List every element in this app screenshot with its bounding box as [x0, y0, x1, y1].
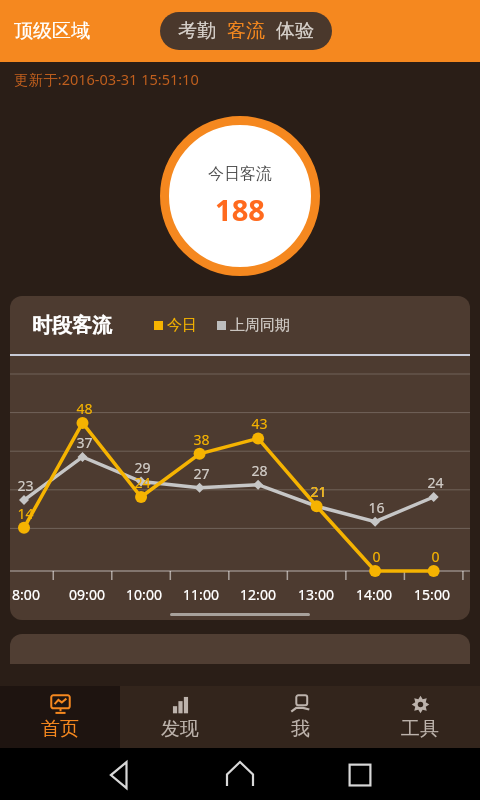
staticText: 考勤: [178, 19, 216, 43]
staticText: 时段客流: [32, 313, 112, 338]
button[interactable]: 考勤: [178, 19, 216, 43]
staticText: 13:00: [298, 585, 334, 604]
staticText: 上周同期: [230, 316, 290, 335]
staticText: 顶级区域: [14, 19, 90, 43]
staticText: 体验: [276, 19, 314, 43]
staticText: 客流: [227, 19, 265, 43]
staticText: 21: [310, 482, 327, 501]
button[interactable]: 发现: [120, 686, 240, 748]
staticText: 14:00: [356, 585, 392, 604]
staticText: 29: [134, 458, 151, 477]
button[interactable]: 客流: [227, 19, 265, 43]
staticText: 0: [431, 547, 440, 566]
staticText: 48: [76, 399, 93, 418]
staticText: 21: [310, 482, 327, 501]
button[interactable]: 上周同期: [217, 316, 290, 335]
staticText: 10:00: [126, 585, 162, 604]
staticText: 8:00: [12, 585, 40, 604]
staticText: 24: [427, 473, 444, 492]
staticText: 16: [368, 498, 385, 517]
staticText: 24: [134, 473, 151, 492]
staticText: 23: [17, 476, 34, 495]
staticText: 12:00: [240, 585, 276, 604]
staticText: 发现: [161, 717, 199, 741]
staticText: 更新于:2016-03-31 15:51:10: [14, 69, 199, 89]
staticText: 11:00: [183, 585, 219, 604]
staticText: 09:00: [69, 585, 105, 604]
staticText: 我: [291, 717, 310, 741]
button[interactable]: 今日: [154, 316, 197, 335]
staticText: 27: [193, 464, 210, 483]
staticText: 43: [251, 414, 268, 433]
button[interactable]: 体验: [276, 19, 314, 43]
staticText: 首页: [41, 717, 79, 741]
button[interactable]: 首页: [0, 686, 120, 748]
staticText: 0: [372, 547, 381, 566]
button[interactable]: 工具: [360, 686, 480, 748]
button[interactable]: 今日客流: [160, 116, 320, 276]
staticText: 28: [251, 461, 268, 480]
staticText: 38: [193, 430, 210, 449]
staticText: 14: [17, 504, 34, 523]
staticText: 今日客流: [208, 164, 272, 184]
button[interactable]: 我: [240, 686, 360, 748]
staticText: 188: [215, 190, 265, 229]
staticText: 15:00: [414, 585, 450, 604]
staticText: 今日: [167, 316, 197, 335]
staticText: 37: [76, 433, 93, 452]
staticText: 工具: [401, 717, 439, 741]
